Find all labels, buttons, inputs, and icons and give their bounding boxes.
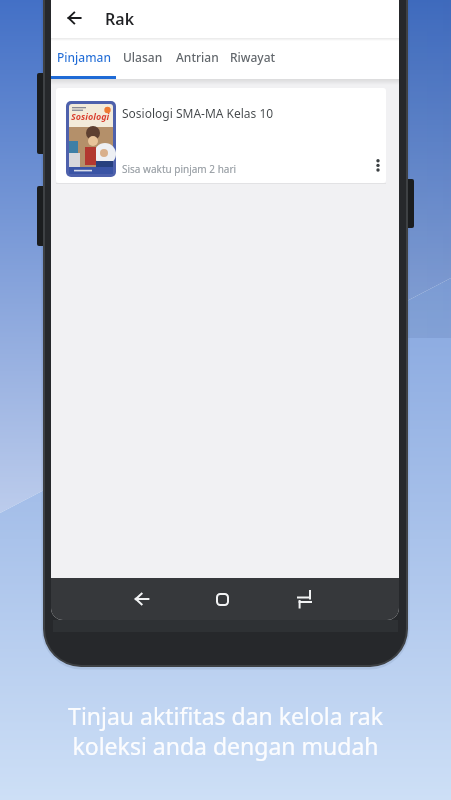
staticText: Antrian xyxy=(176,49,219,65)
button[interactable] xyxy=(364,150,386,180)
staticText: Rak xyxy=(105,8,135,30)
button[interactable]: Antrian xyxy=(169,38,225,76)
button[interactable] xyxy=(57,1,91,35)
button[interactable]: Riwayat xyxy=(225,38,280,76)
staticText: Tinjau aktifitas dan kelola rak koleksi … xyxy=(0,700,451,761)
staticText: Sosiologi xyxy=(71,110,110,122)
staticText: Riwayat xyxy=(230,49,276,65)
staticText: Sosiologi SMA-MA Kelas 10 xyxy=(122,105,274,121)
button[interactable] xyxy=(287,582,321,616)
staticText: Pinjaman xyxy=(57,49,111,65)
button[interactable]: Ulasan xyxy=(116,38,169,76)
button[interactable] xyxy=(125,582,159,616)
staticText: Sisa waktu pinjam 2 hari xyxy=(122,162,237,176)
button[interactable] xyxy=(205,582,239,616)
button[interactable]: Sosiologi xyxy=(56,88,386,183)
staticText: Ulasan xyxy=(123,49,163,65)
button[interactable]: Pinjaman xyxy=(51,38,116,76)
